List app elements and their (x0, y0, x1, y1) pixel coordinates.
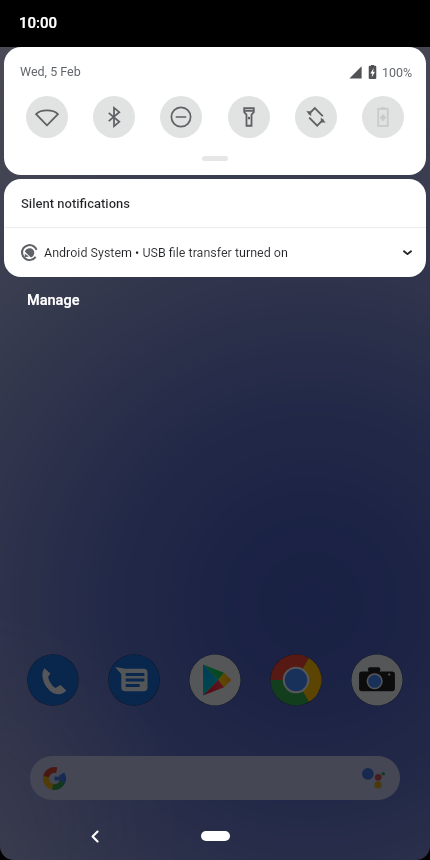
button[interactable]: Silent notifications (4, 179, 426, 227)
staticText: Android System • USB file transfer turne… (44, 245, 288, 260)
button[interactable]: Play Store (189, 654, 241, 706)
button[interactable]: Do Not Disturb (160, 96, 202, 138)
button[interactable]: Battery Saver (362, 96, 404, 138)
button[interactable]: Search (30, 756, 400, 800)
button[interactable]: Bluetooth (93, 96, 135, 138)
button[interactable]: Phone (27, 654, 79, 706)
button[interactable]: Back (81, 822, 109, 850)
button[interactable]: Auto rotate (295, 96, 337, 138)
button[interactable]: Wi-Fi (26, 96, 68, 138)
button[interactable]: Chrome (270, 654, 322, 706)
button[interactable]: Manage (27, 292, 80, 309)
staticText: Wed, 5 Feb (20, 64, 81, 79)
staticText: Silent notifications (21, 196, 130, 211)
staticText: 10:00 (19, 14, 58, 32)
button[interactable]: Expand (202, 156, 228, 161)
staticText: 100% (382, 65, 413, 80)
button[interactable]: Camera (351, 654, 403, 706)
button[interactable]: Messages (108, 654, 160, 706)
button[interactable]: Android System • USB file transfer turne… (4, 228, 426, 277)
button[interactable]: Home (201, 831, 230, 841)
button[interactable]: Flashlight (228, 96, 270, 138)
